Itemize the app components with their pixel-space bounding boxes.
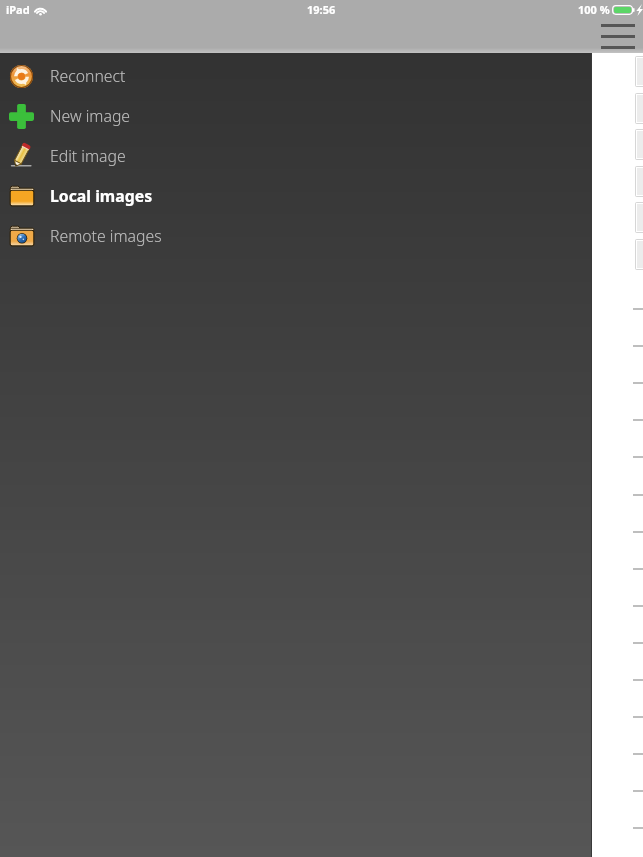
staticText: Reconnect: [50, 65, 126, 87]
staticText: 100 %: [578, 2, 610, 17]
button[interactable]: [610, 421, 643, 458]
button[interactable]: Open navigation menu: [595, 18, 641, 54]
staticText: iPad: [6, 2, 30, 17]
button[interactable]: Remote images: [0, 216, 592, 256]
button[interactable]: [610, 533, 643, 570]
staticText: Remote images: [50, 225, 162, 247]
staticText: New image: [50, 105, 131, 127]
staticText: 19:56: [307, 2, 336, 17]
button[interactable]: Edit image: [0, 136, 592, 176]
button[interactable]: [610, 607, 643, 644]
button[interactable]: Reconnect: [0, 56, 592, 96]
staticText: Local images: [50, 185, 153, 207]
button[interactable]: [610, 681, 643, 718]
button[interactable]: [610, 347, 643, 384]
button[interactable]: [610, 718, 643, 755]
button[interactable]: New image: [0, 96, 592, 136]
button[interactable]: [610, 310, 643, 347]
button[interactable]: [610, 570, 643, 607]
staticText: Edit image: [50, 145, 126, 167]
button[interactable]: [610, 384, 643, 421]
button[interactable]: [610, 792, 643, 829]
button[interactable]: [610, 644, 643, 681]
button[interactable]: [610, 496, 643, 533]
button[interactable]: [610, 755, 643, 792]
button[interactable]: Local images: [0, 176, 592, 216]
button[interactable]: [610, 459, 643, 496]
button[interactable]: [610, 273, 643, 310]
